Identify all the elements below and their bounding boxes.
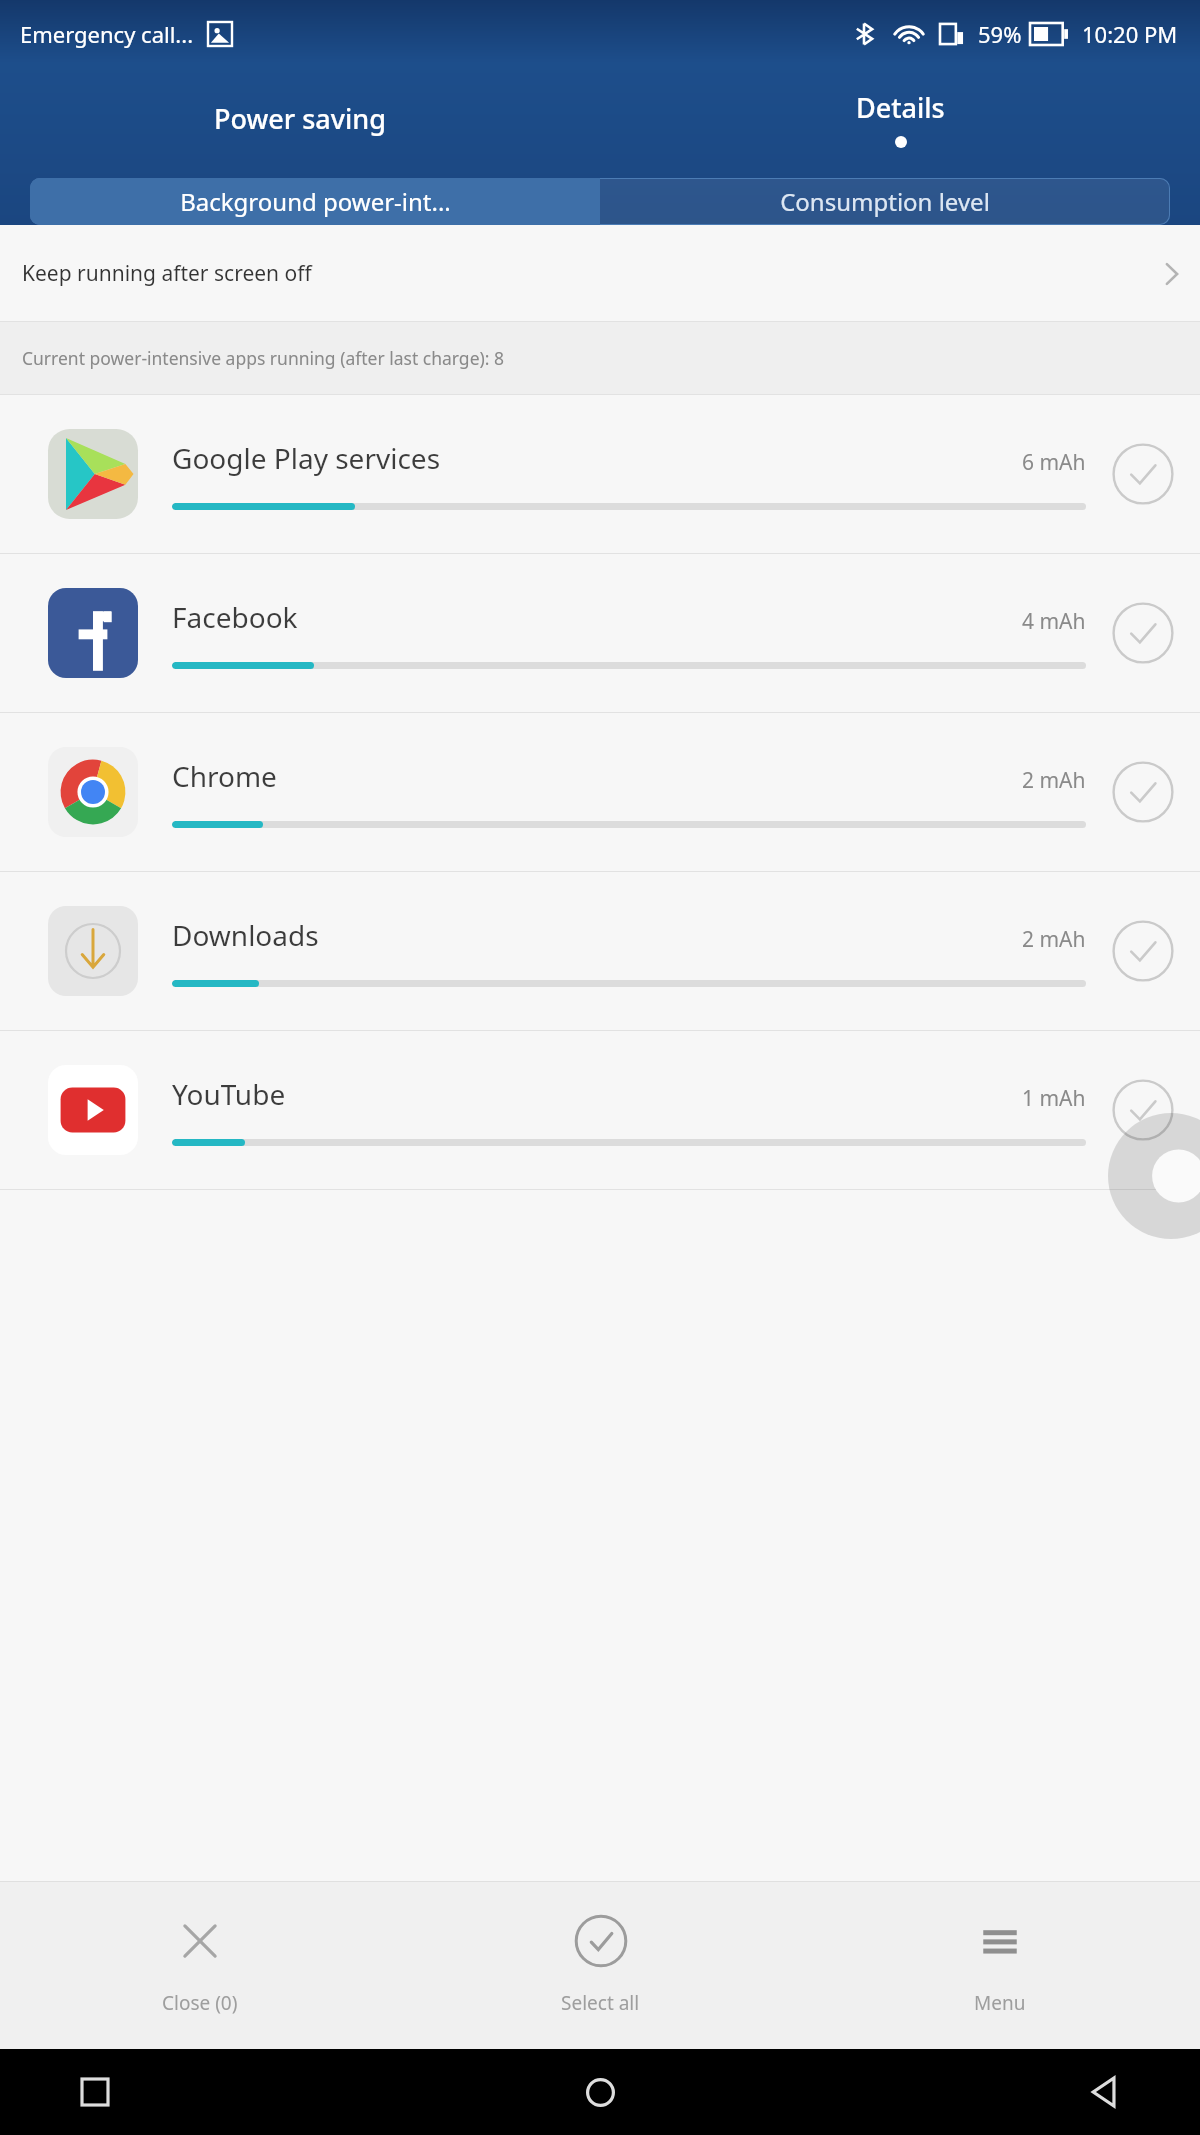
button[interactable]: Power saving [0,68,600,168]
button[interactable]: Background power-int... [30,178,600,225]
button[interactable]: Downloads [0,872,1200,1030]
button[interactable]: Chrome [0,713,1200,871]
staticText: Keep running after screen off [22,259,1164,288]
button[interactable]: Consumption level [600,178,1170,225]
button[interactable]: Close (0) [0,1881,400,2049]
button[interactable]: Keep running after screen off [0,225,1200,321]
button[interactable]: Menu [800,1881,1200,2049]
staticText: Menu [974,1990,1026,2016]
staticText: 4 mAh [1022,607,1086,636]
staticText: Google Play services [172,439,1022,477]
staticText: 2 mAh [1022,925,1086,954]
button[interactable]: Back [1068,2055,1142,2129]
staticText: YouTube [172,1075,1022,1113]
button[interactable]: Details [600,68,1200,168]
button[interactable]: Home [563,2055,637,2129]
button[interactable]: Recents [58,2055,132,2129]
button[interactable]: Select YouTube [1112,1079,1174,1141]
staticText: 6 mAh [1022,448,1086,477]
button[interactable]: YouTube [0,1031,1200,1189]
button[interactable]: Select Chrome [1112,761,1174,823]
staticText: Select all [561,1990,640,2016]
staticText: 2 mAh [1022,766,1086,795]
staticText: Background power-int... [180,185,451,218]
button[interactable]: Select Downloads [1112,920,1174,982]
staticText: Details [856,89,945,126]
staticText: Power saving [214,100,386,137]
staticText: Close (0) [162,1990,238,2016]
staticText: 1 mAh [1022,1084,1086,1113]
button[interactable]: Google Play services [0,395,1200,553]
staticText: Chrome [172,757,1022,795]
staticText: 59% [978,19,1022,49]
button[interactable]: Floating assistant [1108,1113,1200,1239]
button[interactable]: Select Facebook [1112,602,1174,664]
staticText: Current power-intensive apps running (af… [22,346,505,370]
staticText: Consumption level [780,185,990,218]
staticText: Facebook [172,598,1022,636]
button[interactable]: Facebook [0,554,1200,712]
button[interactable]: Select Google Play services [1112,443,1174,505]
button[interactable]: Select all [400,1881,800,2049]
staticText: Downloads [172,916,1022,954]
staticText: 10:20 PM [1082,19,1178,49]
staticText: Emergency call... [20,19,194,49]
